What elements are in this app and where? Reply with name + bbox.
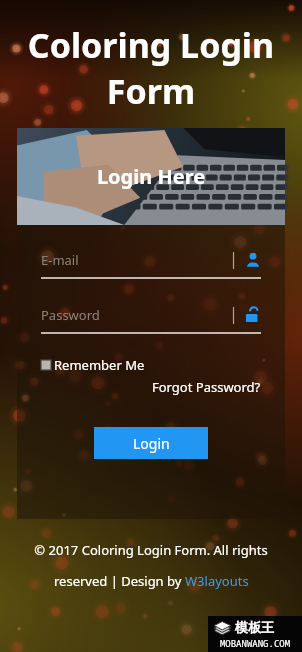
staticText: Remember Me xyxy=(54,356,145,374)
staticText: Login xyxy=(133,434,170,453)
staticText: Login Here xyxy=(17,163,285,190)
staticText: Coloring Login Form xyxy=(0,22,302,114)
staticText: reserved | Design by xyxy=(54,572,185,590)
button[interactable]: Remember Me xyxy=(41,356,145,374)
button[interactable]: E-mail xyxy=(41,251,261,279)
button[interactable]: Login xyxy=(94,427,208,459)
other: E-mail xyxy=(245,252,261,268)
button[interactable]: W3layouts xyxy=(185,572,249,590)
other: Password xyxy=(245,307,261,323)
staticText: MOBANWANG.COM xyxy=(208,637,302,649)
button[interactable]: Password xyxy=(41,306,261,334)
staticText: © 2017 Coloring Login Form. All rights xyxy=(12,541,290,559)
staticText: 模板王 xyxy=(235,619,274,635)
button[interactable]: Forgot Password? xyxy=(152,378,261,396)
staticText: Password xyxy=(41,306,231,324)
staticText: E-mail xyxy=(41,251,231,269)
